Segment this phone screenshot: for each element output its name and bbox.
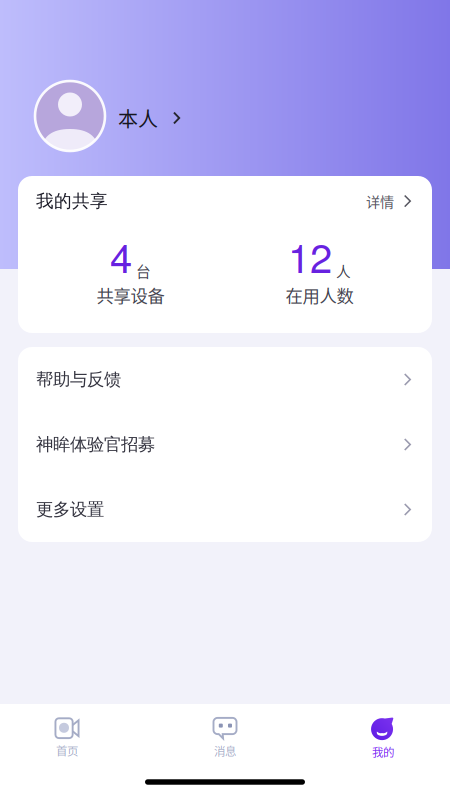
button[interactable]: 更多设置: [18, 477, 432, 542]
button[interactable]: 帮助与反馈: [18, 347, 432, 412]
staticText: 详情: [366, 191, 394, 211]
button[interactable]: 消息: [146, 702, 304, 766]
staticText: 更多设置: [36, 499, 104, 520]
button[interactable]: 本人: [0, 81, 450, 151]
staticText: 消息: [214, 742, 236, 759]
staticText: 4: [110, 227, 132, 284]
staticText: 帮助与反馈: [36, 369, 121, 390]
staticText: 本人: [118, 103, 158, 132]
staticText: 神眸体验官招募: [36, 434, 155, 455]
button[interactable]: 详情: [366, 191, 411, 211]
staticText: 我的共享: [36, 190, 108, 212]
staticText: 台: [136, 260, 151, 281]
staticText: 在用人数: [285, 282, 353, 308]
staticText: 我的: [372, 743, 394, 760]
staticText: 12: [288, 227, 332, 284]
staticText: 共享设备: [96, 282, 164, 308]
button[interactable]: 我的: [304, 702, 450, 766]
staticText: 首页: [56, 742, 78, 759]
button[interactable]: 神眸体验官招募: [18, 412, 432, 477]
button[interactable]: 首页: [0, 702, 146, 766]
staticText: 人: [336, 260, 351, 281]
